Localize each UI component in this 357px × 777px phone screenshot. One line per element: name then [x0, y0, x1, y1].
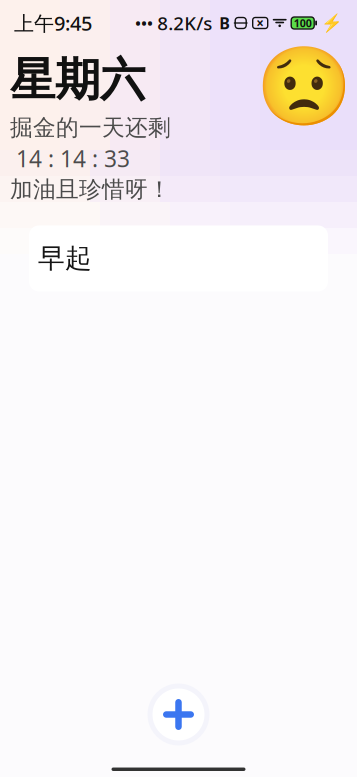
staticText: 早起	[38, 242, 92, 275]
staticText: 14 : 14 : 33	[10, 143, 130, 174]
staticText: B	[219, 12, 230, 34]
staticText: ×	[256, 14, 264, 32]
staticText: 加油且珍惜呀！	[10, 176, 171, 203]
staticText: 😟	[256, 43, 352, 131]
staticText: 100	[294, 16, 312, 30]
staticText: •••	[135, 13, 153, 33]
staticText: 上午9:45	[14, 10, 92, 36]
button[interactable]: 早起	[29, 225, 328, 291]
staticText: 掘金的一天还剩	[10, 114, 171, 141]
staticText: 星期六	[10, 52, 145, 108]
staticText: ⚡	[321, 13, 343, 33]
staticText: 8.2K/s	[157, 11, 212, 35]
button[interactable]: 添加	[147, 683, 209, 745]
